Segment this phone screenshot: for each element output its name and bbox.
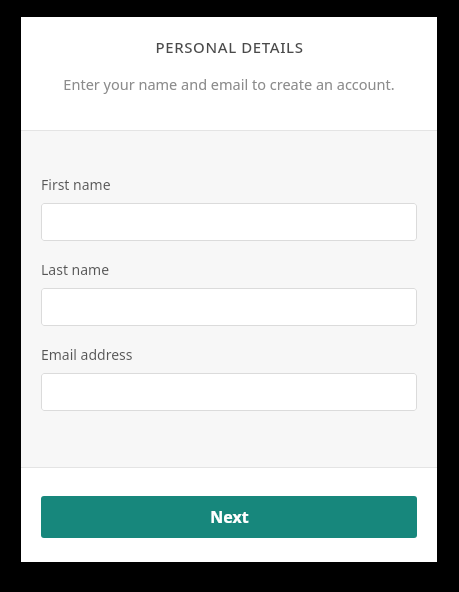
button[interactable]: Email address: [41, 373, 417, 411]
staticText: Last name: [41, 260, 110, 279]
button[interactable]: First name: [41, 203, 417, 241]
staticText: PERSONAL DETAILS: [155, 37, 304, 57]
staticText: Next: [210, 506, 249, 528]
staticText: Email address: [41, 345, 133, 364]
staticText: First name: [41, 175, 111, 194]
button[interactable]: Next: [41, 496, 417, 538]
button[interactable]: Last name: [41, 288, 417, 326]
staticText: Enter your name and email to create an a…: [63, 74, 395, 94]
